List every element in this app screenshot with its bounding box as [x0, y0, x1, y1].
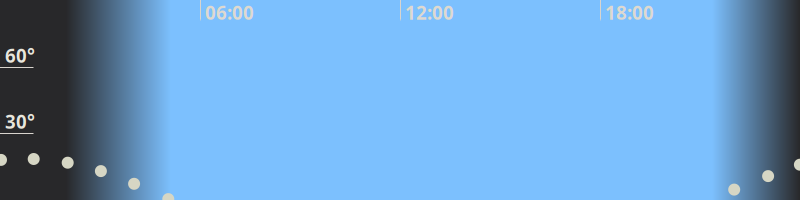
staticText: 60° — [5, 43, 35, 68]
staticText: 18:00 — [605, 0, 654, 25]
staticText: 06:00 — [205, 0, 254, 25]
staticText: 30° — [5, 109, 35, 134]
staticText: 12:00 — [405, 0, 454, 25]
